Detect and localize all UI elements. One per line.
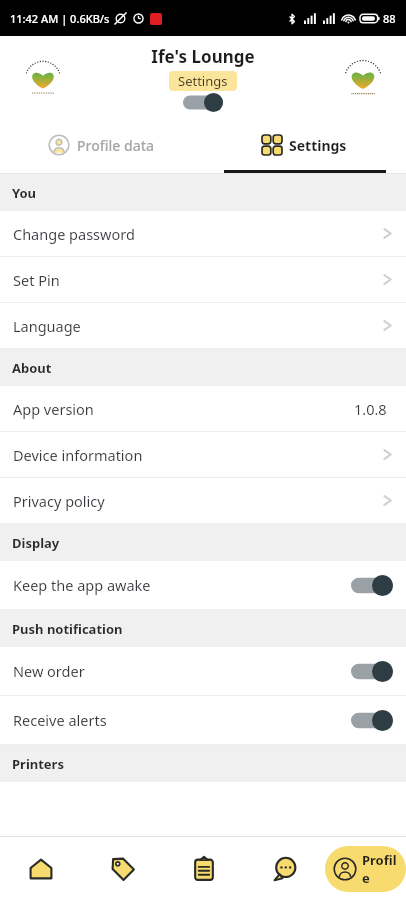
button[interactable]: Orders (163, 837, 244, 900)
button[interactable]: Profile data (0, 120, 203, 170)
button[interactable]: Restaurant logo (12, 53, 74, 103)
button[interactable]: Language (0, 303, 406, 348)
button[interactable]: Receive alerts (0, 696, 406, 744)
button[interactable]: Offers (82, 837, 163, 900)
button[interactable]: Profile (325, 837, 406, 900)
button[interactable]: App version (0, 386, 406, 431)
staticText: Change password (13, 224, 135, 244)
staticText: Settings (289, 136, 347, 155)
staticText: 1.0.8 (354, 399, 387, 419)
staticText: New order (13, 661, 85, 681)
staticText: Privacy policy (13, 491, 105, 511)
button[interactable]: Device information (0, 432, 406, 477)
button[interactable]: Home (0, 837, 82, 900)
staticText: Set Pin (13, 270, 60, 290)
staticText: 88 (383, 11, 396, 26)
staticText: Profile data (77, 136, 155, 155)
button[interactable]: Chat (244, 837, 325, 900)
staticText: 11:42 AM | 0.6KB/s (10, 11, 110, 26)
button[interactable]: Change password (0, 211, 406, 256)
staticText: Device information (13, 445, 143, 465)
staticText: Display (12, 534, 60, 552)
button[interactable]: New order (0, 647, 406, 695)
staticText: You (12, 184, 37, 202)
button[interactable]: Privacy policy (0, 478, 406, 523)
button[interactable]: Brand logo (332, 53, 394, 103)
staticText: Keep the app awake (13, 575, 151, 595)
button[interactable]: Keep the app awake (0, 561, 406, 609)
button[interactable]: Set Pin (0, 257, 406, 302)
staticText: Language (13, 316, 81, 336)
staticText: Receive alerts (13, 710, 107, 730)
other: Online toggle (183, 93, 223, 112)
staticText: Ife's Lounge (151, 45, 255, 68)
staticText: Settings (178, 72, 228, 90)
button[interactable]: Settings (203, 120, 406, 170)
staticText: App version (13, 399, 94, 419)
staticText: Push notification (12, 620, 123, 638)
staticText: Profile (362, 851, 398, 887)
staticText: Printers (12, 755, 64, 773)
staticText: About (12, 359, 52, 377)
